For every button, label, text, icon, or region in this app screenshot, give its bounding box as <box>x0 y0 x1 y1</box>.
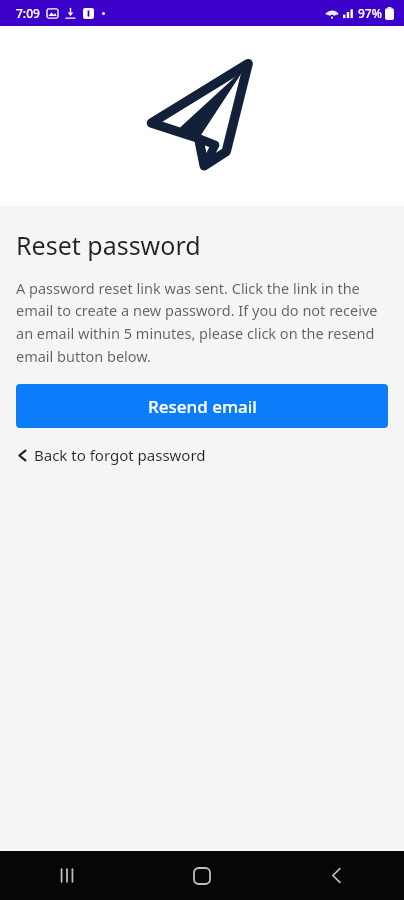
staticText: Back to forgot password <box>34 445 206 465</box>
staticText: 97% <box>358 5 382 21</box>
staticText: Resend email <box>148 395 257 418</box>
button[interactable]: Back <box>269 851 404 900</box>
button[interactable]: Home <box>134 851 269 900</box>
button[interactable]: Recent apps <box>0 851 134 900</box>
button[interactable]: Back to forgot password <box>12 438 214 472</box>
staticText: Reset password <box>16 228 201 262</box>
button[interactable]: Resend email <box>16 384 388 428</box>
staticText: A password reset link was sent. Click th… <box>16 278 390 366</box>
staticText: 7:09 <box>16 5 40 21</box>
